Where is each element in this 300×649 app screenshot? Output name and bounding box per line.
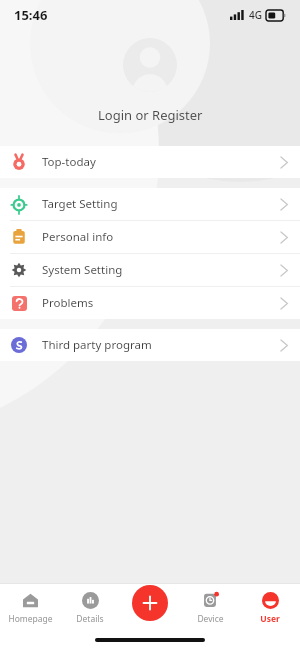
staticText: Device: [197, 613, 224, 625]
button[interactable]: Login or Register: [90, 104, 211, 126]
staticText: Homepage: [8, 613, 53, 625]
button[interactable]: User: [240, 589, 300, 627]
staticText: Login or Register: [98, 106, 203, 124]
button[interactable]: Target Setting: [0, 188, 300, 220]
button[interactable]: Add: [132, 585, 168, 621]
button[interactable]: Device: [180, 589, 240, 627]
button[interactable]: Top-today: [0, 146, 300, 178]
button[interactable]: System Setting: [0, 254, 300, 286]
staticText: Details: [76, 613, 104, 625]
staticText: Problems: [42, 295, 94, 311]
button[interactable]: Details: [60, 589, 120, 627]
button[interactable]: Third party program: [0, 329, 300, 361]
staticText: Top-today: [42, 154, 96, 170]
staticText: Personal info: [42, 229, 114, 245]
button[interactable]: Avatar: [123, 38, 177, 92]
button[interactable]: Homepage: [0, 589, 60, 627]
staticText: Target Setting: [42, 196, 118, 212]
button[interactable]: Personal info: [0, 221, 300, 253]
staticText: 4G: [249, 8, 262, 22]
staticText: User: [260, 613, 280, 625]
staticText: Third party program: [42, 337, 152, 353]
staticText: 15:46: [14, 6, 48, 24]
button[interactable]: Problems: [0, 287, 300, 319]
staticText: System Setting: [42, 262, 123, 278]
